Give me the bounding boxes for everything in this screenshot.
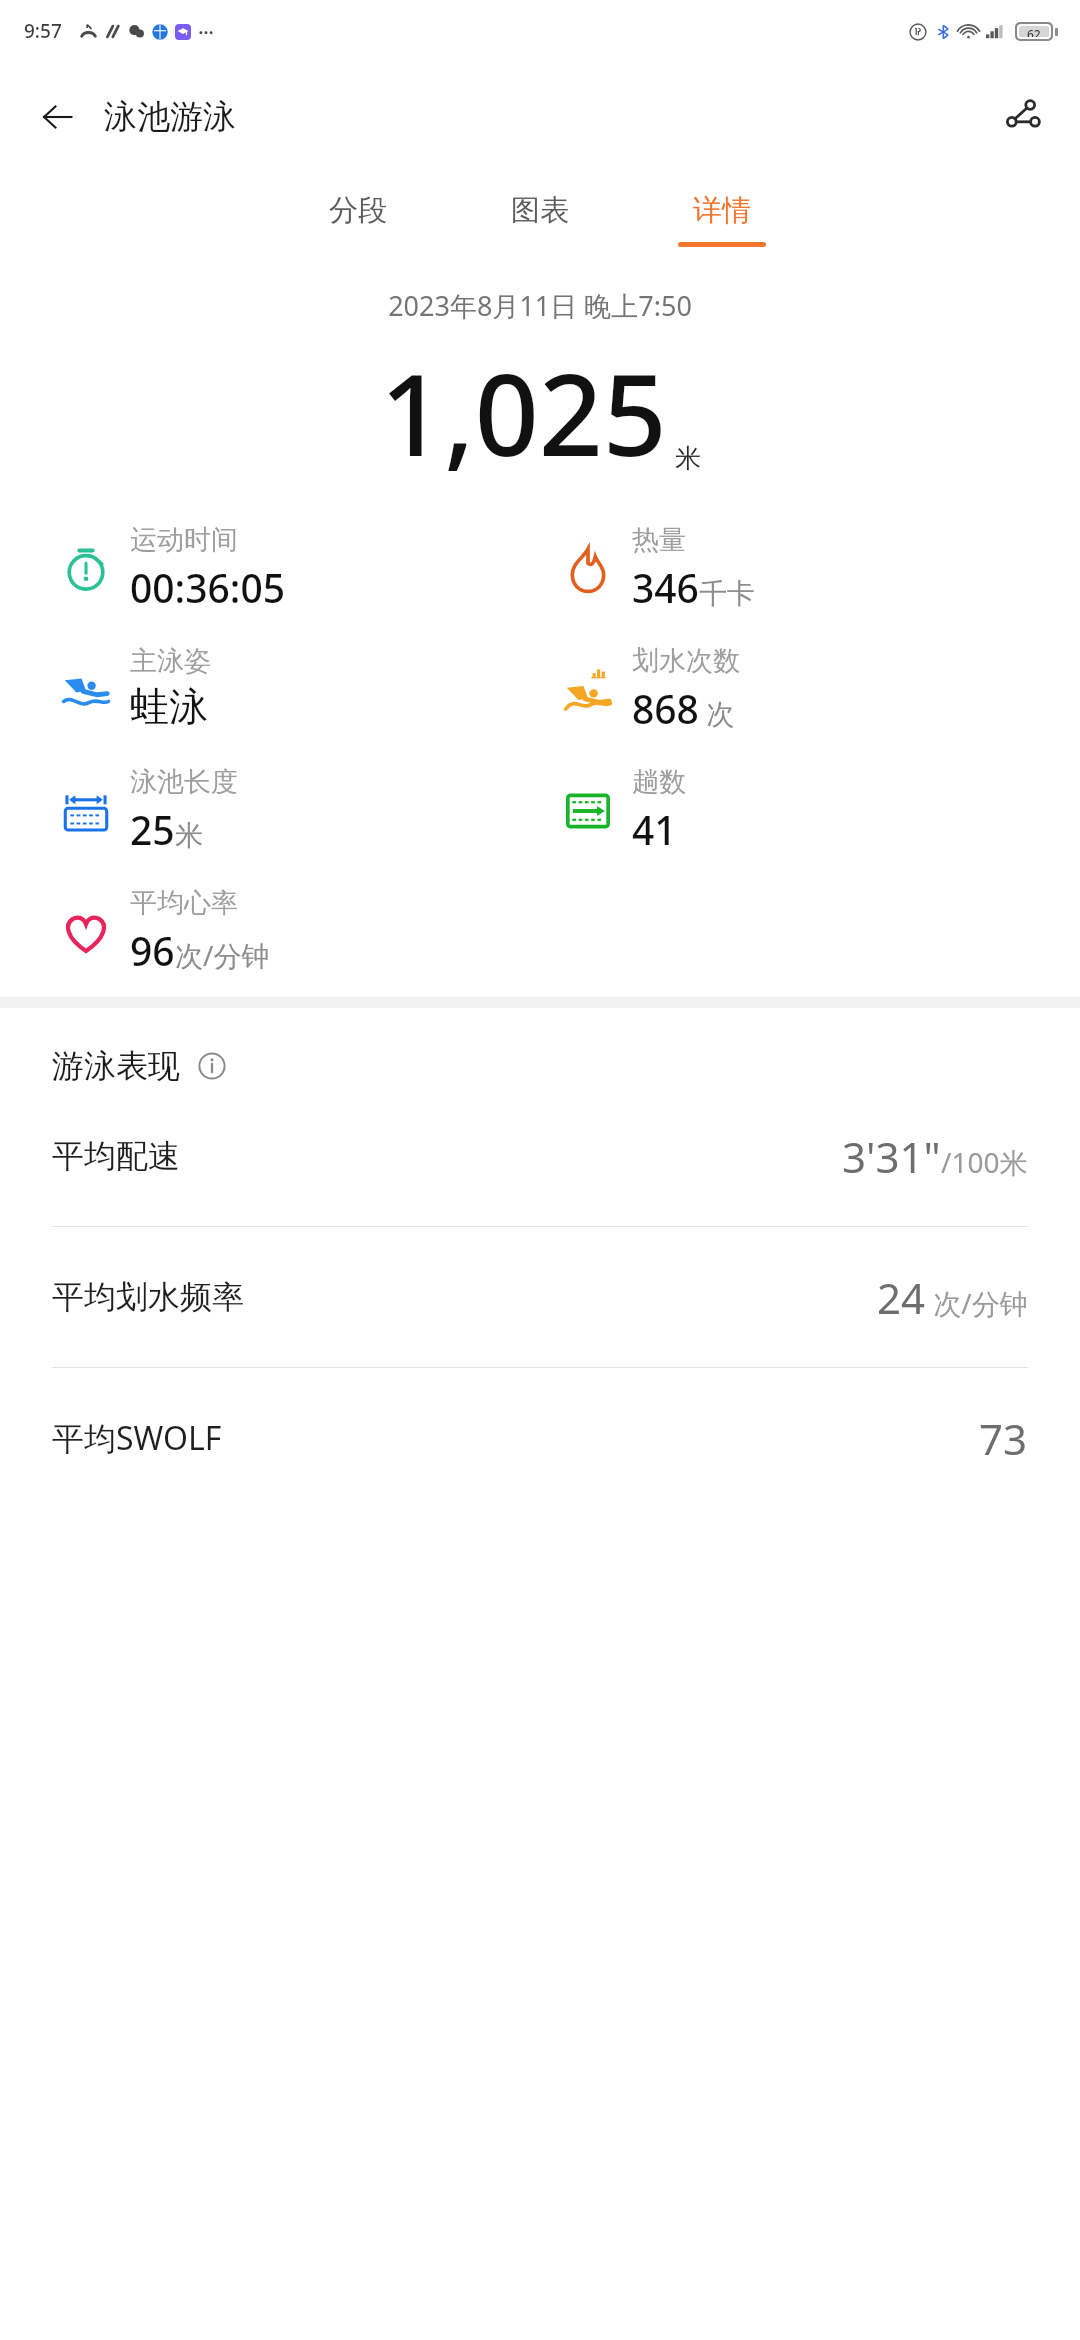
staticText: 9:57 bbox=[24, 18, 62, 44]
staticText: 346 bbox=[632, 561, 699, 614]
staticText: 96 bbox=[130, 924, 175, 977]
staticText: 泳池长度 bbox=[130, 765, 238, 799]
staticText: 游泳表现 bbox=[52, 1046, 180, 1086]
staticText: 次 bbox=[699, 694, 735, 732]
staticText: 868 bbox=[632, 682, 699, 735]
staticText: 2023年8月11日 晚上7:50 bbox=[388, 287, 692, 324]
staticText: 24 bbox=[877, 1269, 926, 1326]
staticText: 3'31" bbox=[842, 1128, 941, 1185]
button[interactable]: 运动时间 bbox=[58, 523, 286, 614]
staticText: 平均划水频率 bbox=[52, 1277, 244, 1317]
staticText: 米 bbox=[675, 442, 701, 475]
staticText: 主泳姿 bbox=[130, 644, 211, 678]
staticText: 1,025 bbox=[380, 336, 667, 489]
staticText: 详情 bbox=[693, 192, 751, 229]
staticText: 千卡 bbox=[699, 576, 755, 611]
staticText: 图表 bbox=[511, 192, 569, 229]
button[interactable]: Info bbox=[192, 1046, 232, 1086]
button[interactable]: 泳池长度 bbox=[58, 765, 238, 856]
staticText: 平均心率 bbox=[130, 886, 238, 920]
staticText: 蛙泳 bbox=[130, 682, 208, 731]
button[interactable]: 平均划水频率 bbox=[0, 1227, 1080, 1367]
staticText: 运动时间 bbox=[130, 523, 238, 557]
button[interactable]: 详情 bbox=[668, 186, 776, 253]
staticText: 分段 bbox=[329, 192, 387, 229]
staticText: 25 bbox=[130, 803, 175, 856]
staticText: 次/分钟 bbox=[926, 1284, 1028, 1322]
button[interactable]: 趟数 bbox=[560, 765, 686, 856]
staticText: 平均SWOLF bbox=[52, 1416, 222, 1460]
staticText: 41 bbox=[632, 803, 677, 856]
button[interactable]: 平均SWOLF bbox=[0, 1368, 1080, 1508]
staticText: 62 bbox=[1027, 26, 1041, 37]
staticText: 次/分钟 bbox=[175, 936, 270, 974]
button[interactable]: 分段 bbox=[304, 186, 412, 253]
staticText: /100米 bbox=[941, 1143, 1028, 1181]
staticText: 00:36:05 bbox=[130, 561, 286, 614]
button[interactable]: 热量 bbox=[560, 523, 755, 614]
button[interactable]: 平均心率 bbox=[58, 886, 270, 977]
staticText: 泳池游泳 bbox=[104, 96, 236, 138]
button[interactable]: 划水次数 bbox=[560, 644, 740, 735]
staticText: 平均配速 bbox=[52, 1136, 180, 1176]
button[interactable]: Back bbox=[26, 86, 88, 148]
button[interactable]: 图表 bbox=[486, 186, 594, 253]
staticText: 趟数 bbox=[632, 765, 686, 799]
staticText: 划水次数 bbox=[632, 644, 740, 678]
button[interactable]: 平均配速 bbox=[0, 1086, 1080, 1226]
button[interactable]: Share bbox=[992, 86, 1054, 148]
staticText: 73 bbox=[979, 1410, 1028, 1467]
button[interactable]: 主泳姿 bbox=[58, 644, 211, 731]
staticText: 热量 bbox=[632, 523, 686, 557]
staticText: 米 bbox=[175, 818, 203, 853]
